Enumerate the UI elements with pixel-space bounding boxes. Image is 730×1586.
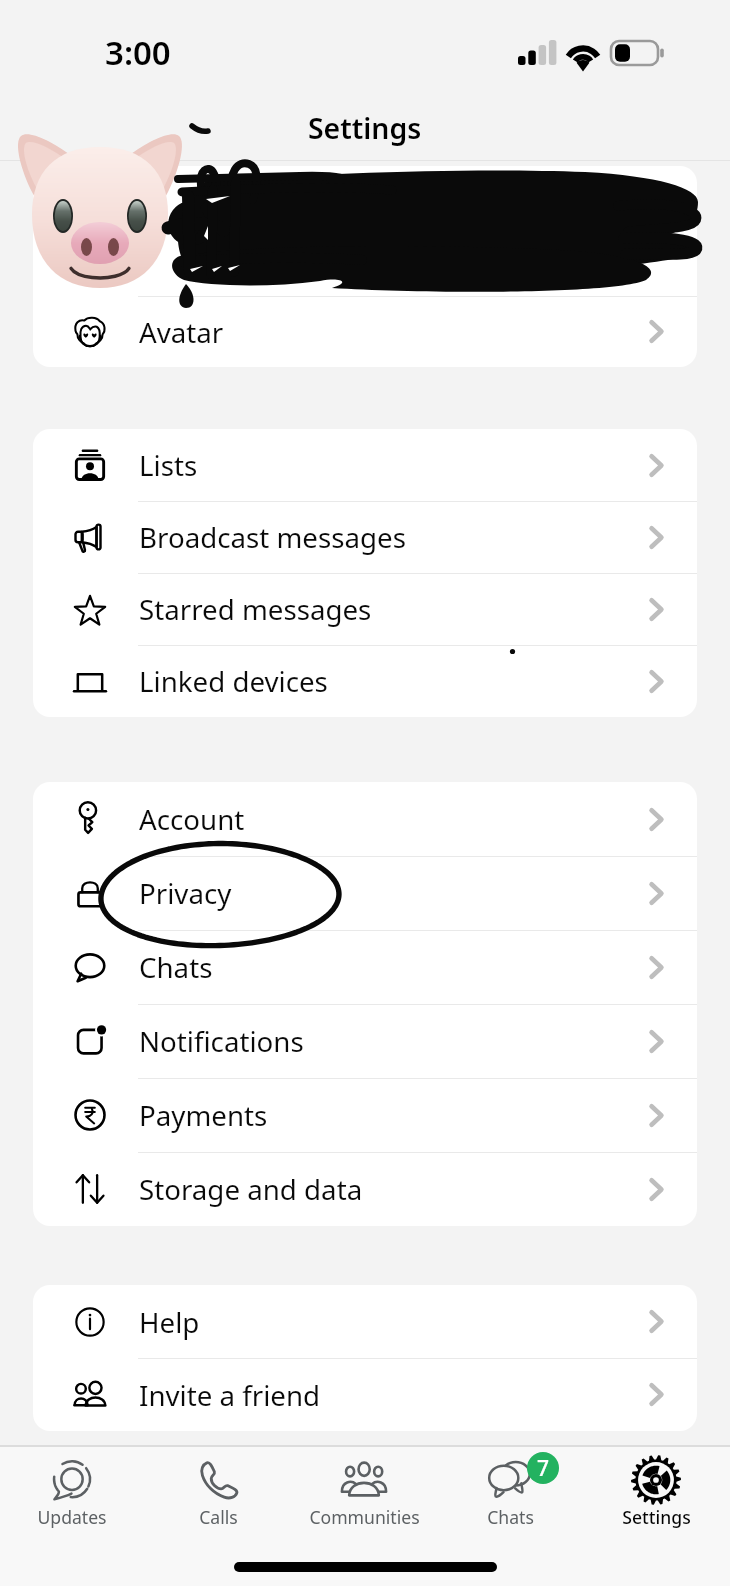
other: Updates <box>46 1454 98 1506</box>
button[interactable]: Avatar <box>33 296 697 367</box>
staticText: 3:00 <box>105 30 171 75</box>
button[interactable]: Payments <box>33 1078 697 1152</box>
button[interactable]: Chats <box>33 930 697 1004</box>
button[interactable] <box>33 166 697 296</box>
button[interactable]: Starred messages <box>33 573 697 645</box>
staticText: Chats <box>139 948 213 986</box>
button[interactable]: Privacy <box>33 856 697 930</box>
staticText: 7 <box>537 1454 550 1483</box>
other: Settings <box>630 1454 682 1506</box>
other: Communities <box>338 1454 390 1506</box>
staticText: Payments <box>139 1096 268 1134</box>
staticText: Storage and data <box>139 1170 363 1208</box>
button[interactable]: Linked devices <box>33 645 697 717</box>
staticText: Avatar <box>139 313 224 351</box>
staticText: Linked devices <box>139 662 328 700</box>
button[interactable]: Lists <box>33 429 697 501</box>
staticText: Invite a friend <box>139 1376 321 1414</box>
button[interactable]: Communities <box>291 1447 437 1543</box>
button[interactable]: Account <box>33 782 697 856</box>
button[interactable]: Invite a friend <box>33 1358 697 1431</box>
other: Chats <box>484 1454 536 1506</box>
staticText: Notifications <box>139 1022 304 1060</box>
staticText: Broadcast messages <box>139 518 406 556</box>
staticText: Settings <box>622 1505 691 1529</box>
staticText: Calls <box>199 1505 238 1529</box>
button[interactable]: Settings <box>583 1447 729 1543</box>
staticText: Help <box>139 1303 200 1341</box>
staticText: Privacy <box>139 874 232 912</box>
staticText: Lists <box>139 446 198 484</box>
button[interactable]: Notifications <box>33 1004 697 1078</box>
button[interactable]: Updates <box>0 1447 145 1543</box>
staticText: Chats <box>487 1505 534 1529</box>
staticText: Account <box>139 800 245 838</box>
staticText: Communities <box>309 1505 420 1529</box>
button[interactable]: Broadcast messages <box>33 501 697 573</box>
button[interactable]: Calls <box>145 1447 291 1543</box>
staticText: Settings <box>308 109 422 148</box>
button[interactable]: Help <box>33 1285 697 1358</box>
staticText: Updates <box>37 1505 107 1529</box>
other: Calls <box>192 1454 244 1506</box>
button[interactable]: Chats <box>437 1447 583 1543</box>
button[interactable]: Storage and data <box>33 1152 697 1226</box>
staticText: Starred messages <box>139 590 372 628</box>
